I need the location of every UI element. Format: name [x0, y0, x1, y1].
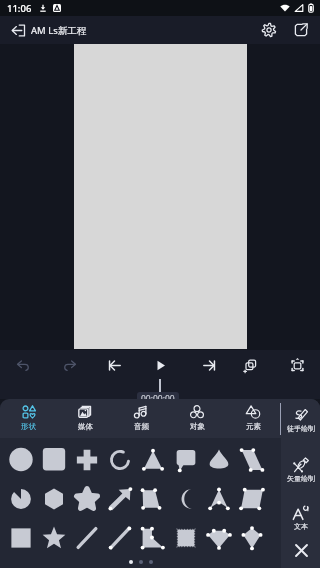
button[interactable]: Shape 18 — [37, 518, 70, 557]
staticText: 媒体 — [78, 422, 93, 431]
button[interactable]: 元素 — [225, 399, 281, 438]
button[interactable]: Shape 11 — [70, 479, 103, 518]
button[interactable]: Shape 2 — [37, 440, 70, 479]
button[interactable]: Shape 16 — [235, 479, 268, 518]
button[interactable]: Undo — [12, 354, 34, 376]
button[interactable]: 对象 — [169, 399, 225, 438]
button[interactable]: Shape 14 — [169, 479, 202, 518]
button[interactable]: 媒体 — [57, 399, 113, 438]
button[interactable]: Shape 22 — [169, 518, 202, 557]
staticText: 元素 — [246, 422, 261, 431]
button[interactable]: Settings — [257, 18, 281, 42]
button[interactable]: Shape 8 — [235, 440, 268, 479]
button[interactable]: 音频 — [113, 399, 169, 438]
button[interactable]: 文本 — [282, 504, 320, 532]
button[interactable]: Shape 23 — [202, 518, 235, 557]
button[interactable]: Shape 24 — [235, 518, 268, 557]
button[interactable]: Redo — [58, 354, 80, 376]
button[interactable]: Shape 5 — [136, 440, 169, 479]
button[interactable]: Shape 9 — [5, 479, 37, 518]
staticText: 矢量绘制 — [287, 474, 315, 483]
button[interactable]: Shape 15 — [202, 479, 235, 518]
staticText: 形状 — [21, 422, 36, 431]
staticText: 对象 — [190, 422, 205, 431]
button[interactable]: Shape 3 — [70, 440, 103, 479]
staticText: 音频 — [134, 422, 149, 431]
button[interactable]: Shape 21 — [136, 518, 169, 557]
button[interactable]: Shape 1 — [5, 440, 37, 479]
staticText: 11:06 — [7, 2, 32, 15]
button[interactable]: Shape 17 — [5, 518, 37, 557]
button[interactable]: Add keyframe — [239, 354, 261, 376]
button[interactable]: 矢量绘制 — [282, 456, 320, 484]
button[interactable]: Shape 12 — [103, 479, 136, 518]
button[interactable]: Fit to screen — [286, 354, 308, 376]
button[interactable]: Export — [289, 18, 313, 42]
button[interactable]: Skip to start — [103, 354, 125, 376]
staticText: 00:00:00 — [141, 393, 175, 405]
button[interactable]: Shape 4 — [103, 440, 136, 479]
staticText: 文本 — [294, 522, 308, 531]
button[interactable]: 形状 — [0, 399, 57, 438]
button[interactable]: Shape 19 — [70, 518, 103, 557]
button[interactable]: Close — [287, 536, 315, 564]
button[interactable]: 徒手绘制 — [282, 406, 320, 434]
button[interactable]: Shape 7 — [202, 440, 235, 479]
button[interactable]: Shape 20 — [103, 518, 136, 557]
staticText: AM Ls新工程 — [31, 24, 87, 37]
staticText: 徒手绘制 — [287, 424, 315, 433]
button[interactable]: Play — [149, 354, 171, 376]
button[interactable]: Shape 13 — [136, 479, 169, 518]
button[interactable]: Back — [6, 18, 30, 42]
button[interactable]: Shape 6 — [169, 440, 202, 479]
button[interactable]: Shape 10 — [37, 479, 70, 518]
button[interactable]: Skip to end — [198, 354, 220, 376]
